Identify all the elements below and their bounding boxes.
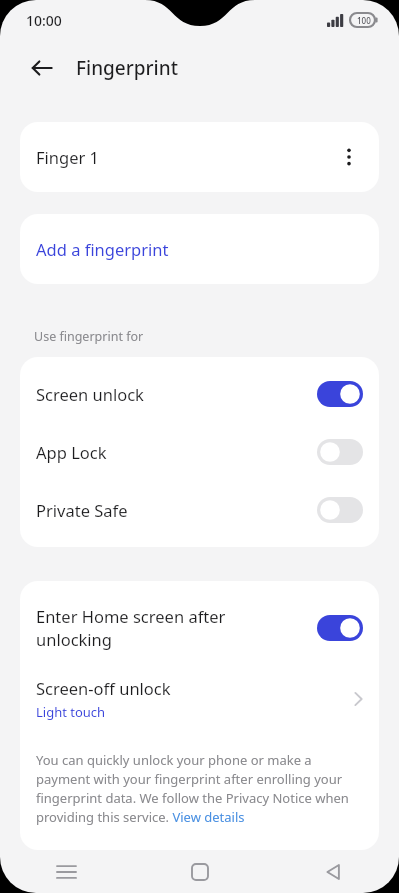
button[interactable]: Screen-off unlock bbox=[20, 665, 379, 733]
staticText: Finger 1 bbox=[36, 146, 100, 168]
staticText: 100 bbox=[357, 15, 371, 26]
staticText: Screen unlock bbox=[36, 383, 317, 405]
button[interactable]: Back bbox=[22, 48, 62, 88]
staticText: 10:00 bbox=[26, 11, 62, 30]
staticText: Enter Home screen after unlocking bbox=[36, 605, 301, 651]
button[interactable]: Back bbox=[266, 850, 399, 893]
staticText: Private Safe bbox=[36, 499, 317, 521]
staticText: Add a fingerprint bbox=[36, 238, 169, 260]
staticText: Use fingerprint for bbox=[34, 328, 144, 345]
button[interactable]: Enter Home screen after unlocking bbox=[20, 581, 379, 665]
button[interactable]: Add a fingerprint bbox=[20, 214, 379, 284]
button[interactable]: Screen unlock bbox=[20, 365, 379, 423]
button[interactable]: Home bbox=[133, 850, 266, 893]
button[interactable]: Recent apps bbox=[0, 850, 133, 893]
staticText: You can quickly unlock your phone or mak… bbox=[36, 751, 365, 826]
button[interactable]: More options bbox=[329, 137, 369, 177]
staticText: Fingerprint bbox=[76, 55, 178, 81]
staticText: App Lock bbox=[36, 441, 317, 463]
staticText: Light touch bbox=[36, 703, 106, 721]
button[interactable]: Finger 1 bbox=[20, 122, 379, 192]
button[interactable]: App Lock bbox=[20, 423, 379, 481]
staticText: Screen-off unlock bbox=[36, 677, 171, 699]
button[interactable]: Private Safe bbox=[20, 481, 379, 539]
